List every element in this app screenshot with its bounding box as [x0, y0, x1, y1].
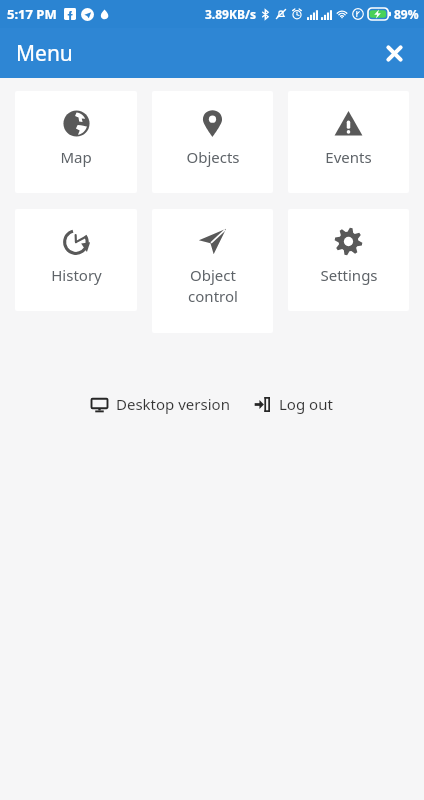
button[interactable]: Objects: [152, 91, 273, 193]
button[interactable]: Map: [15, 91, 137, 193]
button[interactable]: Close menu: [370, 29, 418, 77]
button[interactable]: Settings: [288, 209, 409, 311]
staticText: Log out: [279, 394, 333, 414]
staticText: 5:17 PM: [7, 5, 57, 23]
button[interactable]: Object control: [152, 209, 273, 333]
staticText: Menu: [16, 39, 73, 68]
staticText: Objects: [186, 147, 240, 167]
button[interactable]: Events: [288, 91, 409, 193]
button[interactable]: History: [15, 209, 137, 311]
staticText: Desktop version: [116, 394, 230, 414]
staticText: Events: [325, 147, 372, 167]
staticText: Map: [60, 147, 92, 167]
staticText: History: [51, 265, 102, 285]
staticText: 89%: [394, 6, 419, 22]
staticText: Settings: [320, 265, 378, 285]
button[interactable]: Log out: [250, 388, 337, 420]
staticText: Object control: [188, 265, 238, 307]
staticText: 3.89KB/s: [205, 6, 256, 22]
button[interactable]: Desktop version: [87, 388, 234, 420]
